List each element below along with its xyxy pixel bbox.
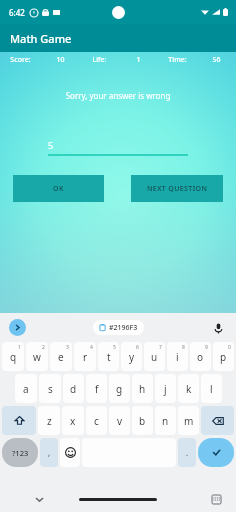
staticText: z xyxy=(47,414,52,428)
staticText: 6 xyxy=(136,344,139,351)
staticText: f xyxy=(95,382,99,396)
staticText: 1 xyxy=(136,55,141,65)
button[interactable]: Hide keyboard xyxy=(31,491,47,507)
staticText: b xyxy=(139,414,146,428)
staticText: 56 xyxy=(212,55,221,65)
staticText: e xyxy=(58,350,64,364)
staticText: k xyxy=(186,382,192,396)
button[interactable]: i xyxy=(167,342,188,371)
staticText: d xyxy=(70,382,77,396)
button[interactable]: y xyxy=(121,342,142,371)
staticText: 8 xyxy=(182,344,185,351)
staticText: NEXT QUESTION xyxy=(147,184,208,194)
button[interactable]: v xyxy=(109,406,130,435)
button[interactable]: , xyxy=(40,438,58,467)
button[interactable]: o xyxy=(190,342,211,371)
button[interactable]: Enter xyxy=(198,438,234,467)
button[interactable]: n xyxy=(155,406,176,435)
button[interactable]: g xyxy=(109,374,130,403)
staticText: 10 xyxy=(56,55,65,65)
button[interactable]: OK xyxy=(13,175,104,202)
staticText: 7 xyxy=(159,344,162,351)
button[interactable]: p xyxy=(213,342,234,371)
staticText: w xyxy=(33,350,41,364)
staticText: Score: xyxy=(10,55,31,65)
button[interactable]: q xyxy=(2,342,24,371)
staticText: Sorry, your answer is wrong xyxy=(0,90,236,101)
button[interactable]: Expand suggestions xyxy=(9,319,26,336)
button[interactable]: e xyxy=(50,342,72,371)
button[interactable]: r xyxy=(74,342,96,371)
button[interactable]: u xyxy=(144,342,165,371)
button[interactable]: t xyxy=(98,342,119,371)
staticText: a xyxy=(23,382,29,396)
staticText: q xyxy=(10,350,17,364)
staticText: Life: xyxy=(92,55,107,65)
button[interactable]: #2196F3 xyxy=(99,320,138,335)
staticText: 3 xyxy=(66,344,69,351)
button[interactable]: f xyxy=(86,374,107,403)
staticText: t xyxy=(107,350,111,364)
button[interactable]: j xyxy=(155,374,176,403)
button[interactable]: m xyxy=(178,406,199,435)
button[interactable]: Shift xyxy=(2,406,36,435)
staticText: Time: xyxy=(168,55,187,65)
button[interactable]: NEXT QUESTION xyxy=(131,175,223,202)
staticText: s xyxy=(48,382,53,396)
staticText: r xyxy=(83,350,88,364)
staticText: x xyxy=(70,414,76,428)
staticText: 5 xyxy=(113,344,116,351)
staticText: 1 xyxy=(18,344,21,351)
staticText: y xyxy=(129,350,135,364)
staticText: 6:42 xyxy=(9,7,25,18)
button[interactable]: Change keyboard xyxy=(208,491,224,507)
staticText: h xyxy=(139,382,146,396)
button[interactable]: w xyxy=(26,342,48,371)
button[interactable]: a xyxy=(15,374,37,403)
staticText: u xyxy=(151,350,158,364)
staticText: n xyxy=(162,414,169,428)
button[interactable]: l xyxy=(201,374,222,403)
button[interactable]: Emoji xyxy=(60,438,80,467)
staticText: 9 xyxy=(205,344,208,351)
staticText: OK xyxy=(53,184,65,194)
button[interactable]: s xyxy=(39,374,61,403)
staticText: . xyxy=(186,447,189,458)
button[interactable]: b xyxy=(132,406,153,435)
staticText: v xyxy=(117,414,123,428)
button[interactable]: Backspace xyxy=(201,406,234,435)
staticText: i xyxy=(176,350,179,364)
staticText: o xyxy=(197,350,204,364)
staticText: 2 xyxy=(42,344,45,351)
staticText: 4 xyxy=(90,344,93,351)
button[interactable]: c xyxy=(86,406,107,435)
button[interactable]: k xyxy=(178,374,199,403)
button[interactable]: ?123 xyxy=(2,438,38,467)
staticText: c xyxy=(94,414,99,428)
staticText: j xyxy=(164,382,167,396)
staticText: , xyxy=(48,447,51,458)
button[interactable]: z xyxy=(38,406,60,435)
button[interactable]: d xyxy=(63,374,84,403)
button[interactable]: x xyxy=(62,406,84,435)
button[interactable]: h xyxy=(132,374,153,403)
staticText: Math Game xyxy=(10,31,72,46)
staticText: g xyxy=(116,382,123,396)
staticText: m xyxy=(184,414,194,428)
button[interactable]: . xyxy=(178,438,196,467)
staticText: 5 xyxy=(48,139,54,151)
staticText: l xyxy=(210,382,213,396)
staticText: 0 xyxy=(228,344,231,351)
staticText: #2196F3 xyxy=(109,323,138,333)
staticText: ?123 xyxy=(12,448,29,458)
staticText: p xyxy=(220,350,227,364)
button[interactable]: Voice input xyxy=(210,320,226,336)
